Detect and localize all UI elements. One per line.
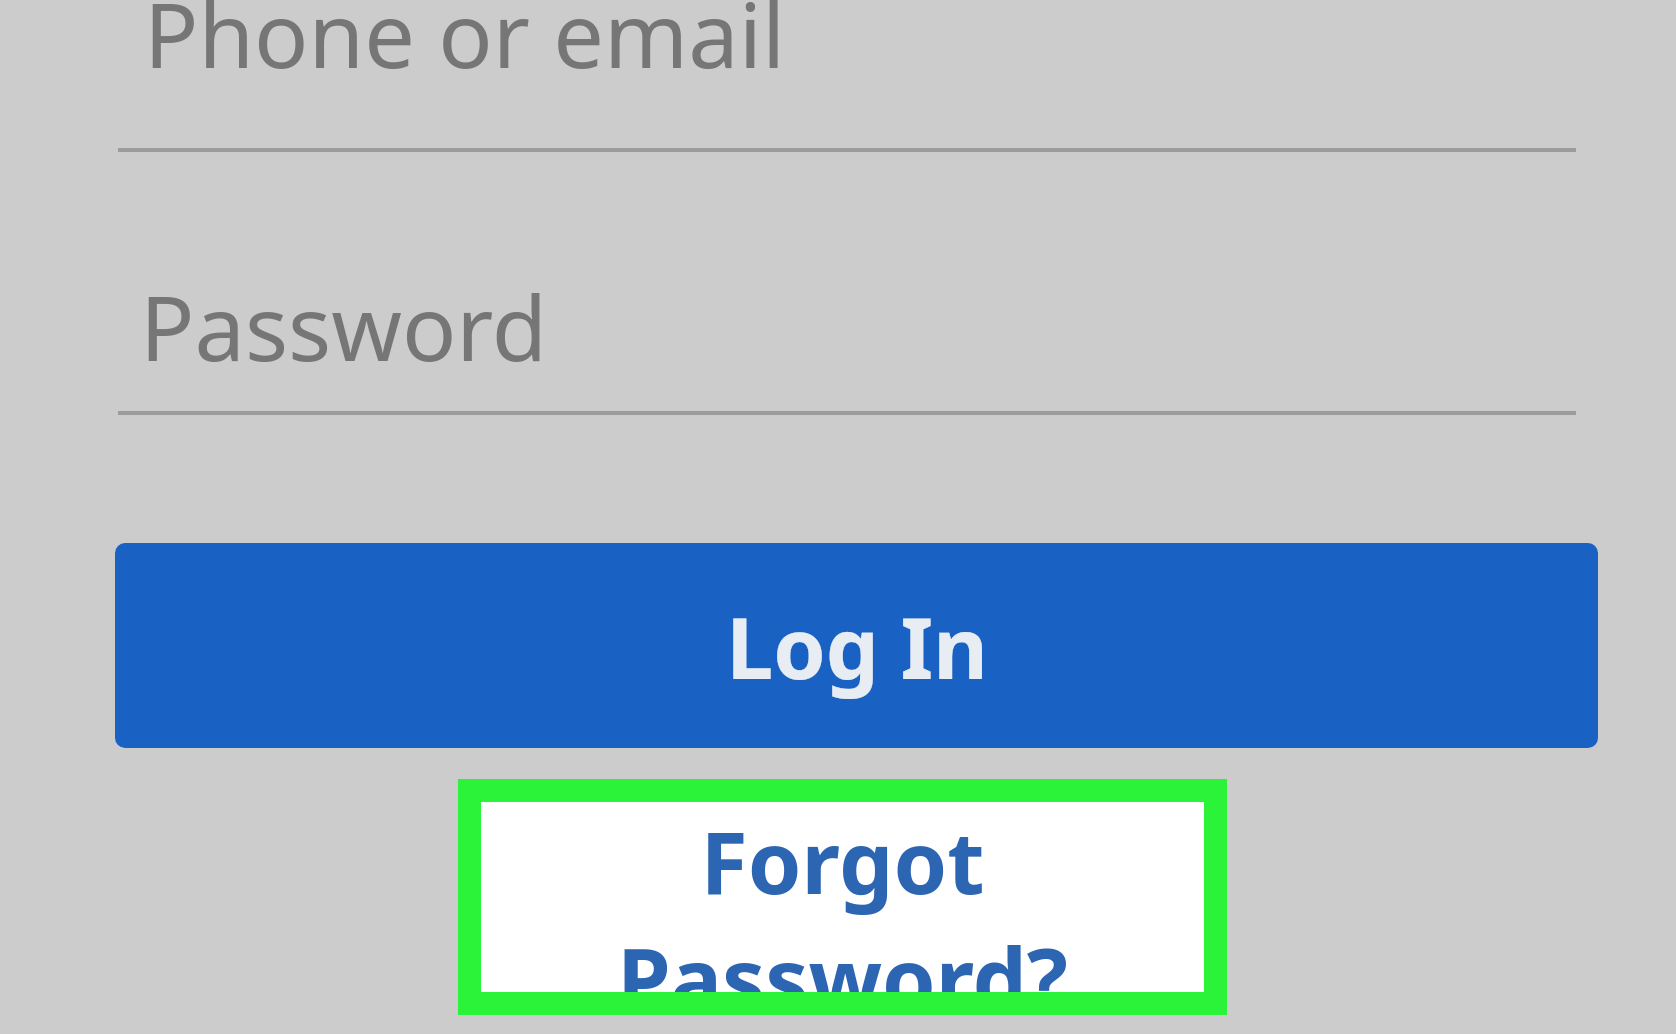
button[interactable]: Log In	[115, 543, 1598, 748]
staticText: Password	[140, 265, 548, 388]
button[interactable]: Password	[118, 255, 1576, 415]
button[interactable]: Forgot Password?	[481, 802, 1204, 992]
staticText: Forgot Password?	[481, 802, 1204, 992]
button[interactable]: Phone or email	[118, 0, 1576, 152]
staticText: Log In	[726, 589, 988, 703]
staticText: Phone or email	[144, 0, 786, 95]
